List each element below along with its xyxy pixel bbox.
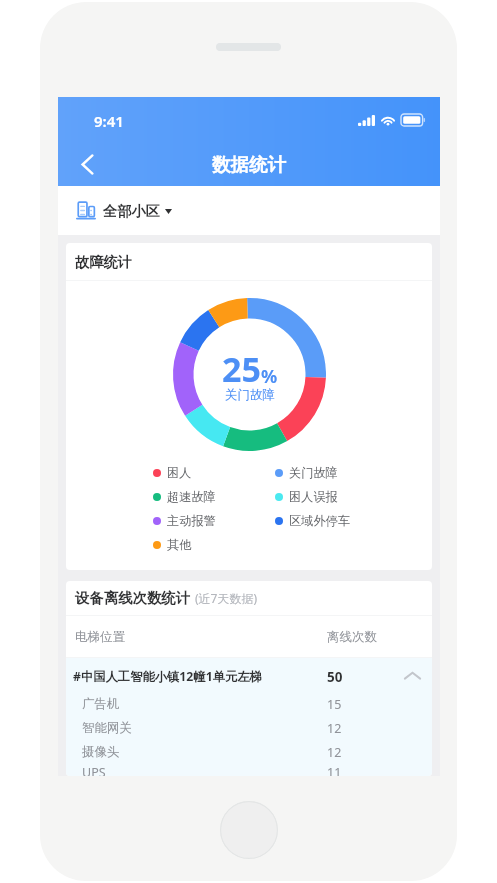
staticText: 15 bbox=[327, 696, 342, 713]
staticText: 困人 bbox=[167, 465, 192, 480]
staticText: 其他 bbox=[167, 537, 192, 552]
staticText: 关门故障 bbox=[289, 465, 338, 480]
staticText: 摄像头 bbox=[82, 744, 120, 760]
staticText: 12 bbox=[327, 744, 342, 761]
staticText: 全部小区 bbox=[103, 202, 160, 220]
staticText: 50 bbox=[327, 668, 343, 686]
staticText: 故障统计 bbox=[75, 253, 132, 271]
staticText: 广告机 bbox=[82, 696, 120, 712]
staticText: 25 bbox=[222, 346, 261, 392]
staticText: UPS bbox=[82, 764, 106, 776]
staticText: 困人误报 bbox=[289, 489, 338, 504]
staticText: 智能网关 bbox=[82, 720, 132, 736]
staticText: 超速故障 bbox=[167, 489, 216, 504]
button[interactable]: 全部小区 bbox=[58, 186, 440, 235]
staticText: (近7天数据) bbox=[195, 590, 258, 606]
staticText: 数据统计 bbox=[212, 153, 286, 176]
staticText: 12 bbox=[327, 720, 342, 737]
staticText: 11 bbox=[327, 764, 342, 776]
staticText: 离线次数 bbox=[327, 629, 377, 645]
staticText: 关门故障 bbox=[225, 387, 275, 403]
staticText: % bbox=[261, 364, 278, 389]
button[interactable]: Back bbox=[66, 143, 108, 185]
other: Collapse bbox=[404, 670, 421, 681]
staticText: 设备离线次数统计 bbox=[75, 589, 191, 607]
staticText: 区域外停车 bbox=[289, 513, 350, 528]
staticText: 9:41 bbox=[94, 111, 124, 131]
button[interactable]: #中国人工智能小镇12幢1单元左梯 bbox=[66, 658, 432, 692]
staticText: 主动报警 bbox=[167, 513, 216, 528]
staticText: #中国人工智能小镇12幢1单元左梯 bbox=[73, 668, 262, 685]
staticText: 电梯位置 bbox=[75, 629, 125, 645]
